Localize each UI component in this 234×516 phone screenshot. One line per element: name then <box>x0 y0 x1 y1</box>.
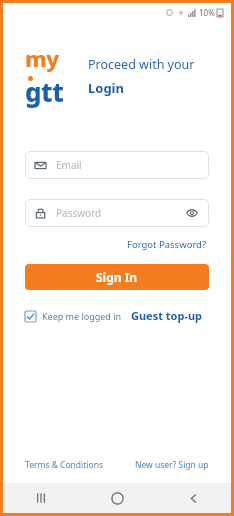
staticText: Proceed with your <box>88 56 195 73</box>
button[interactable]: Keep me logged in <box>25 310 122 322</box>
button[interactable]: Terms & Conditions <box>25 459 104 471</box>
button[interactable]: Recent apps <box>3 483 79 513</box>
button[interactable]: Back <box>155 483 231 513</box>
button[interactable]: New user? Sign up <box>135 459 209 471</box>
staticText: Email <box>56 158 82 172</box>
button[interactable]: Forgot Password? <box>125 236 209 253</box>
staticText: 10% <box>199 7 215 18</box>
staticText: New user? Sign up <box>135 459 209 471</box>
staticText: Login <box>88 79 124 97</box>
button[interactable]: Sign In <box>25 264 209 290</box>
staticText: Guest top-up <box>131 308 203 323</box>
staticText: Terms & Conditions <box>25 459 104 471</box>
button[interactable]: Email <box>25 151 209 179</box>
button[interactable]: Show password <box>185 206 199 220</box>
staticText: Keep me logged in <box>42 310 122 322</box>
button[interactable]: Home <box>79 483 155 513</box>
staticText: Forgot Password? <box>127 238 207 251</box>
button[interactable]: Password <box>25 199 209 227</box>
staticText: my <box>25 43 59 73</box>
button[interactable]: Guest top-up <box>131 308 209 323</box>
staticText: gtt <box>25 74 64 109</box>
staticText: Password <box>56 206 102 220</box>
staticText: Sign In <box>96 269 138 285</box>
